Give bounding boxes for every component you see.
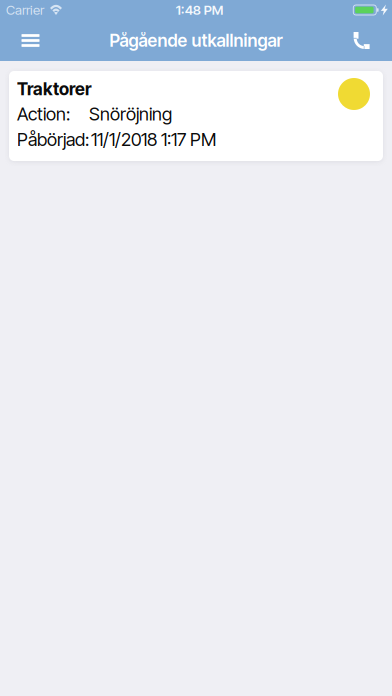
button[interactable]: Menu	[0, 20, 61, 61]
staticText: Carrier	[6, 2, 44, 18]
staticText: Action:	[17, 103, 70, 125]
staticText: Pågående utkallningar	[109, 30, 282, 51]
staticText: Snöröjning	[89, 103, 172, 125]
staticText: Traktorer	[17, 78, 92, 99]
staticText: 11/1/2018 1:17 PM	[91, 128, 216, 150]
button[interactable]: Traktorer	[9, 71, 383, 161]
button[interactable]: Call	[331, 20, 392, 61]
staticText: Påbörjad:	[17, 128, 89, 150]
staticText: 1:48 PM	[176, 2, 224, 18]
